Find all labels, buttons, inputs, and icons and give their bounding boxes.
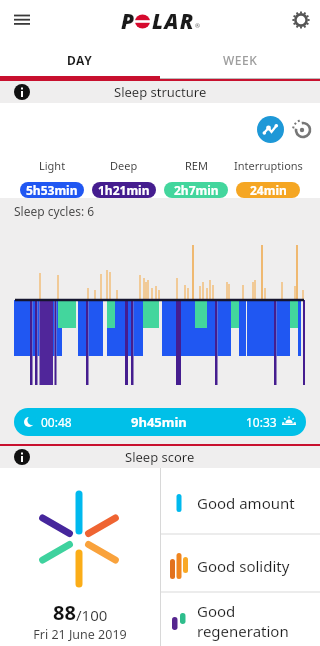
button[interactable]: 24min (236, 182, 300, 198)
staticText: Deep (110, 158, 138, 173)
button[interactable]: 1h21min (92, 182, 156, 198)
staticText: 00:48 (41, 414, 72, 430)
button[interactable]: Good solidity (161, 540, 320, 591)
staticText: WEEK (223, 52, 258, 68)
staticText: Interruptions (234, 158, 303, 173)
staticText: Fri 21 June 2019 (0, 626, 160, 643)
button[interactable]: Good amount (161, 473, 320, 533)
staticText: REM (185, 158, 208, 173)
button[interactable] (7, 5, 37, 35)
staticText: Sleep score (125, 448, 195, 466)
staticText: 10:33 (246, 414, 277, 430)
staticText: 5h53min (26, 182, 78, 198)
staticText: Sleep structure (114, 83, 207, 101)
staticText: 2h7min (174, 182, 219, 198)
staticText: 1h21min (98, 182, 150, 198)
staticText: 24min (250, 182, 287, 198)
button[interactable] (257, 116, 284, 143)
staticText: LAR (152, 7, 195, 36)
staticText: Good solidity (197, 556, 290, 576)
button[interactable]: 5h53min (20, 182, 84, 198)
staticText: 88 (53, 599, 76, 626)
button[interactable]: 00:48 (14, 408, 306, 436)
staticText: Good amount (197, 493, 295, 513)
staticText: P (121, 7, 136, 36)
staticText: /100 (76, 605, 108, 625)
staticText: Light (39, 158, 66, 173)
button[interactable]: Good regeneration (161, 598, 320, 644)
button[interactable]: WEEK (160, 44, 320, 79)
button[interactable]: 2h7min (164, 182, 228, 198)
button[interactable]: DAY (0, 44, 160, 79)
staticText: DAY (67, 52, 93, 68)
staticText: ® (195, 22, 200, 30)
button[interactable] (288, 7, 314, 33)
staticText: Good regeneration (197, 601, 289, 641)
button[interactable] (290, 118, 313, 141)
staticText: 9h45min (131, 413, 187, 431)
staticText: Sleep cycles: 6 (14, 203, 95, 219)
